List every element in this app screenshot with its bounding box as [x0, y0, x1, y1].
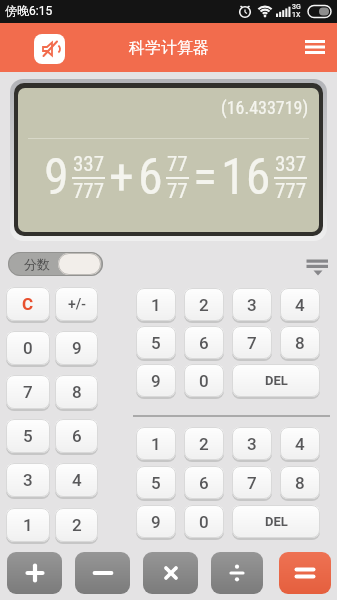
button[interactable]: 0	[184, 364, 224, 397]
staticText: 6	[138, 148, 163, 207]
staticText: 9	[44, 148, 69, 207]
staticText: =	[193, 148, 217, 207]
button[interactable]: 1	[6, 508, 50, 542]
staticText: 6	[199, 333, 209, 353]
staticText: DEL	[265, 514, 288, 529]
button[interactable]: 6	[184, 466, 224, 499]
button[interactable]: 5	[136, 466, 176, 499]
staticText: DEL	[265, 373, 288, 388]
button[interactable]	[7, 552, 62, 594]
staticText: 7	[247, 473, 257, 493]
staticText: (16.433719)	[221, 97, 309, 118]
button[interactable]	[279, 552, 331, 594]
staticText: 7	[23, 382, 33, 402]
button[interactable]: 4	[280, 288, 320, 321]
staticText: 8	[72, 382, 82, 402]
button[interactable]: DEL	[232, 364, 320, 397]
staticText: 9	[151, 512, 161, 532]
button[interactable]: 1	[136, 288, 176, 321]
staticText: 3G	[292, 3, 301, 11]
staticText: 0	[23, 338, 33, 358]
button[interactable]: 9	[55, 331, 98, 365]
button[interactable]: 5	[6, 419, 50, 453]
staticText: 2	[72, 515, 82, 535]
staticText: 9	[72, 338, 82, 358]
button[interactable]	[303, 255, 331, 279]
staticText: 3	[247, 295, 257, 315]
staticText: 科学计算器	[129, 38, 209, 58]
button[interactable]: 4	[55, 463, 98, 497]
button[interactable]: 9	[136, 364, 176, 397]
staticText: 2	[199, 295, 209, 315]
button[interactable]: DEL	[232, 505, 320, 538]
button[interactable]: 7	[232, 466, 272, 499]
button[interactable]: 4	[280, 427, 320, 460]
staticText: 8	[295, 473, 305, 493]
button[interactable]: +/-	[55, 287, 98, 321]
staticText: 1X	[292, 11, 301, 19]
staticText: 777	[73, 179, 105, 204]
staticText: 16	[221, 148, 271, 207]
staticText: 4	[72, 470, 82, 490]
button[interactable]: 8	[280, 466, 320, 499]
button[interactable]: 0	[184, 505, 224, 538]
staticText: 9	[151, 371, 161, 391]
staticText: 77	[167, 179, 188, 204]
staticText: 77	[167, 152, 188, 177]
button[interactable]: 3	[232, 288, 272, 321]
button[interactable]: 8	[55, 375, 98, 409]
button[interactable]: 2	[184, 427, 224, 460]
staticText: 2	[199, 434, 209, 454]
staticText: 3	[247, 434, 257, 454]
button[interactable]	[34, 34, 65, 64]
staticText: 6	[72, 426, 82, 446]
staticText: 1	[151, 434, 161, 454]
button[interactable]: 6	[184, 326, 224, 359]
staticText: 傍晚6:15	[5, 3, 53, 18]
staticText: 7	[247, 333, 257, 353]
button[interactable]: 7	[232, 326, 272, 359]
staticText: 5	[151, 473, 161, 493]
button[interactable]: 8	[280, 326, 320, 359]
staticText: 分数	[24, 256, 50, 272]
staticText: 5	[23, 426, 33, 446]
staticText: 3	[23, 470, 33, 490]
staticText: 6	[199, 473, 209, 493]
button[interactable]: 7	[6, 375, 50, 409]
staticText: 8	[295, 333, 305, 353]
button[interactable]: 5	[136, 326, 176, 359]
staticText: 337	[73, 152, 105, 177]
button[interactable]: 1	[136, 427, 176, 460]
staticText: 1	[23, 515, 33, 535]
button[interactable]: 0	[6, 331, 50, 365]
button[interactable]: 2	[55, 508, 98, 542]
staticText: 0	[199, 371, 209, 391]
staticText: 0	[199, 512, 209, 532]
staticText: 5	[151, 333, 161, 353]
staticText: 337	[275, 152, 307, 177]
button[interactable]: C	[6, 287, 50, 321]
staticText: C	[22, 294, 34, 314]
staticText: +/-	[68, 296, 86, 312]
button[interactable]	[143, 552, 198, 594]
button[interactable]	[298, 32, 331, 62]
button[interactable]: 6	[55, 419, 98, 453]
staticText: 4	[295, 434, 305, 454]
staticText: 777	[275, 179, 307, 204]
button[interactable]: 9	[136, 505, 176, 538]
button[interactable]: 3	[6, 463, 50, 497]
staticText: +	[109, 148, 134, 207]
button[interactable]	[75, 552, 130, 594]
button[interactable]: 2	[184, 288, 224, 321]
button[interactable]	[211, 552, 263, 594]
button[interactable]: 分数	[8, 252, 103, 276]
staticText: 1	[151, 295, 161, 315]
button[interactable]: 3	[232, 427, 272, 460]
staticText: 4	[295, 295, 305, 315]
